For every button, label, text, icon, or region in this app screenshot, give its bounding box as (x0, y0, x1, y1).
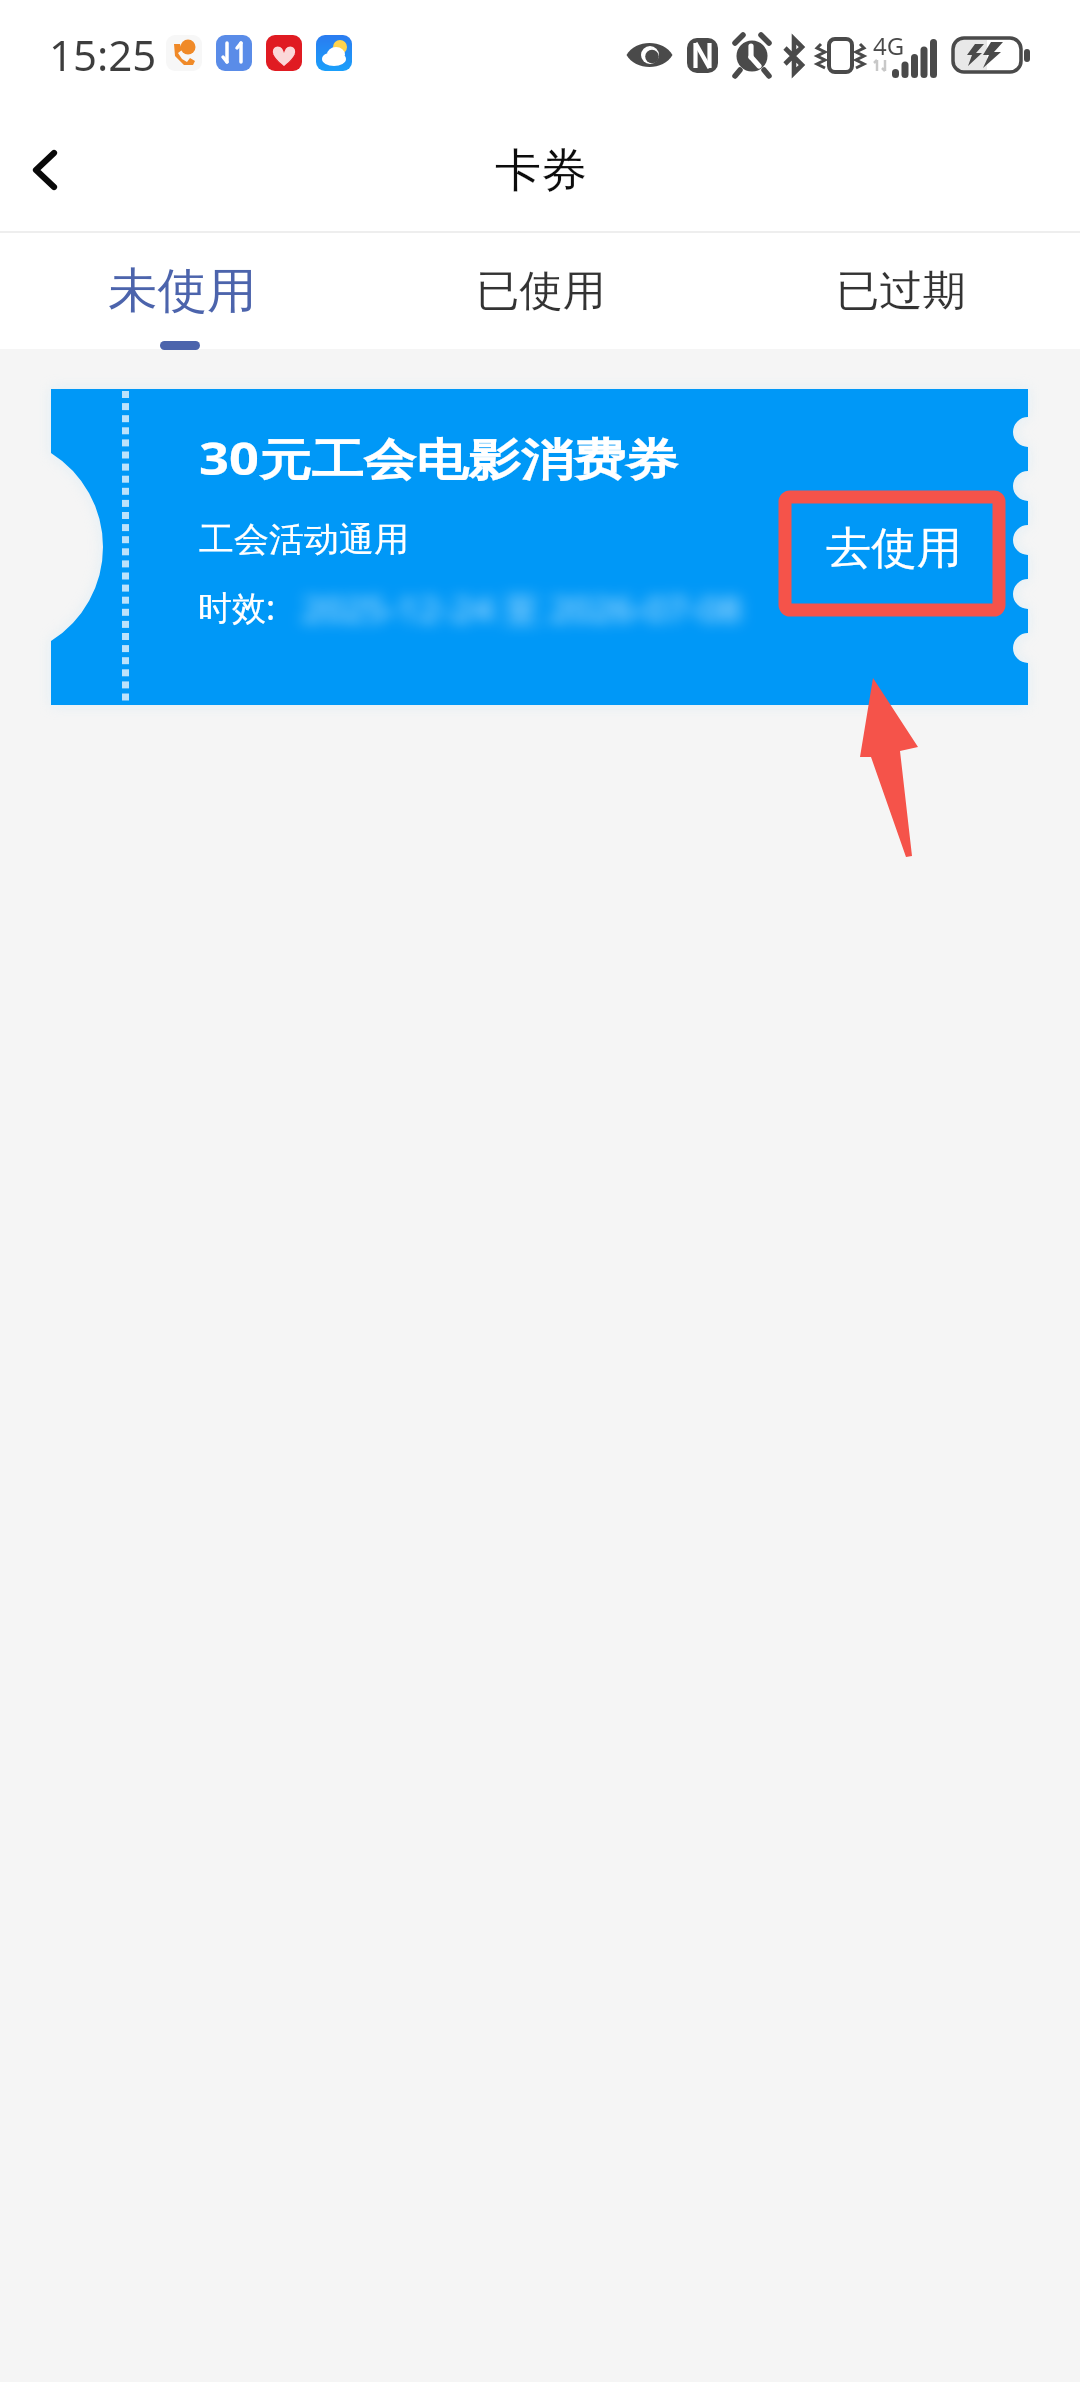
button[interactable]: 未使用 (0, 233, 360, 349)
button[interactable] (51, 389, 1028, 705)
button[interactable]: Back (0, 125, 90, 215)
staticText: 去使用 (826, 521, 962, 576)
staticText: 15:25 (49, 26, 157, 83)
staticText: 2025-12-24 至 2026-07-08 (302, 586, 742, 632)
button[interactable]: 去使用 (793, 500, 995, 596)
staticText: 工会活动通用 (199, 518, 409, 561)
button[interactable]: 已过期 (720, 233, 1080, 349)
staticText: 未使用 (108, 261, 256, 321)
staticText: 30元工会电影消费券 (199, 428, 679, 488)
button[interactable]: 已使用 (360, 233, 720, 349)
staticText: 卡券 (495, 142, 587, 200)
staticText: 已过期 (836, 265, 966, 318)
staticText: 已使用 (476, 265, 606, 318)
staticText: 4G (873, 29, 905, 62)
staticText: 时效: (198, 584, 276, 630)
